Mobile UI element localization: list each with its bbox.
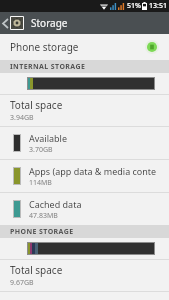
staticText: 51% (127, 1, 141, 11)
button[interactable]: Cached data (0, 193, 169, 225)
staticText: Cached data (29, 198, 82, 210)
button[interactable]: Total space (0, 95, 169, 126)
button[interactable]: Available (0, 127, 169, 159)
staticText: 9.67GB (10, 278, 34, 288)
staticText: INTERNAL STORAGE (10, 62, 86, 72)
staticText: PHONE STORAGE (10, 227, 74, 237)
staticText: Storage (31, 16, 68, 30)
staticText: Total space (10, 263, 63, 277)
staticText: 13:51 (149, 1, 167, 11)
staticText: Phone storage (10, 40, 79, 54)
button[interactable]: Apps (app data & media conte (0, 160, 169, 192)
staticText: Available (29, 132, 67, 144)
staticText: 3.70GB (29, 145, 53, 155)
button[interactable]: Navigate up (0, 12, 26, 34)
staticText: 3.94GB (10, 113, 34, 123)
staticText: 47.83MB (29, 211, 58, 221)
staticText: 114MB (29, 178, 52, 188)
staticText: Total space (10, 98, 63, 112)
button[interactable]: Total space (0, 260, 169, 291)
staticText: Apps (app data & media conte (29, 165, 157, 177)
button[interactable]: Phone storage (0, 34, 169, 60)
